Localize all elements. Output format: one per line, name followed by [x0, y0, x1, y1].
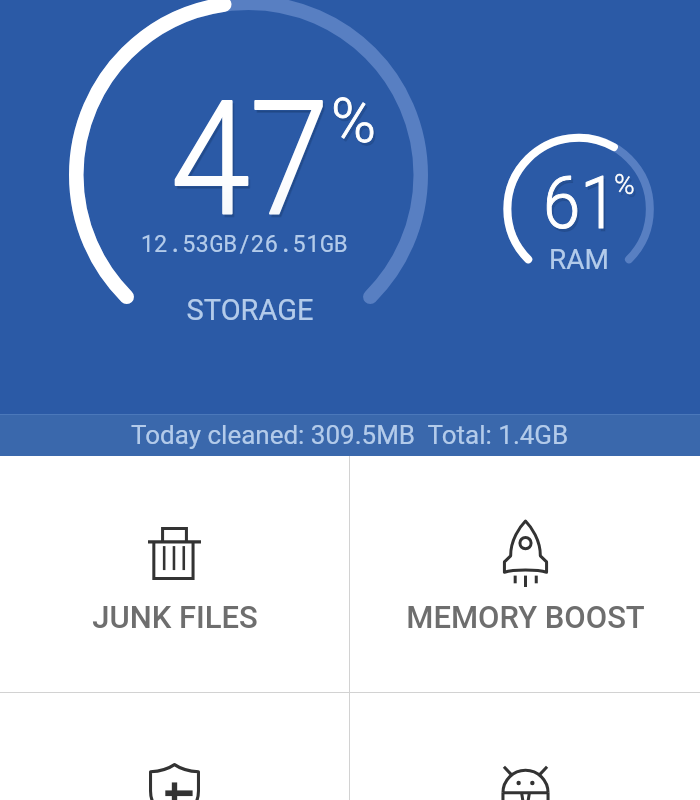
button[interactable]: ANTIVIRUS [0, 693, 349, 800]
button[interactable]: JUNK FILES [0, 456, 349, 692]
staticText: 47 [171, 66, 329, 251]
staticText: 61 [545, 163, 619, 249]
staticText: Today cleaned: 309.5MB Total: 1.4GB [131, 420, 569, 450]
button[interactable]: MEMORY BOOST [350, 456, 700, 692]
staticText: % [614, 168, 635, 201]
staticText: 61 [545, 163, 619, 249]
staticText: JUNK FILES [92, 599, 258, 635]
staticText: 12.53GB/26.51GB [0, 228, 490, 258]
staticText: STORAGE [4, 293, 496, 327]
staticText: % [616, 171, 637, 204]
staticText: 47 [173, 69, 331, 254]
staticText: 61 [543, 160, 617, 246]
staticText: % [616, 171, 637, 204]
staticText: RAM [479, 243, 679, 276]
other: ANTIVIRUS [149, 763, 200, 800]
staticText: % [614, 168, 635, 201]
staticText: % [331, 85, 377, 156]
staticText: % [333, 88, 379, 159]
button[interactable]: APP MANAGER [350, 693, 700, 800]
other: APP MANAGER [501, 765, 550, 800]
staticText: 47 [173, 69, 331, 254]
staticText: MEMORY BOOST [406, 599, 645, 635]
other: MEMORY BOOST [504, 520, 547, 587]
staticText: 47 [171, 66, 329, 251]
other: JUNK FILES [148, 528, 201, 579]
staticText: % [333, 88, 379, 159]
staticText: % [331, 85, 377, 156]
staticText: 61 [543, 160, 617, 246]
button[interactable]: Today cleaned: 309.5MB Total: 1.4GB [0, 414, 700, 456]
